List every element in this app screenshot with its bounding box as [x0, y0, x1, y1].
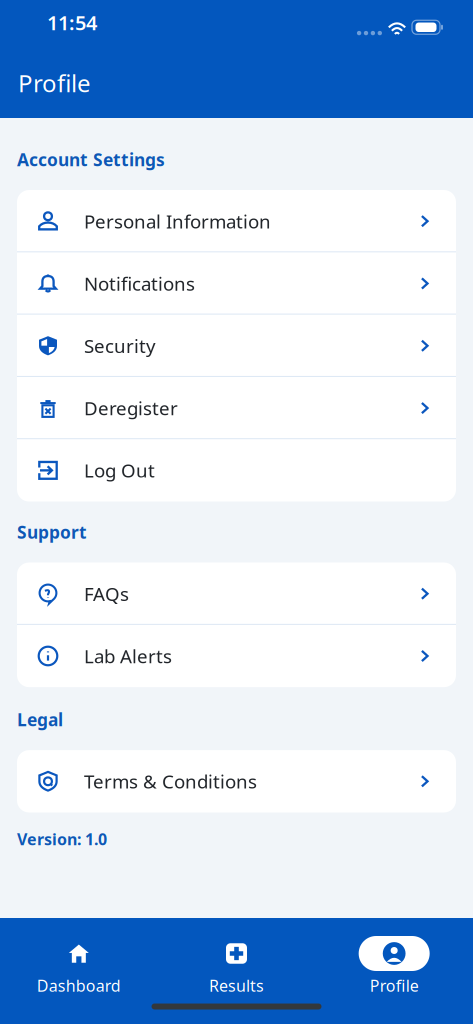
staticText: Personal Information — [84, 209, 271, 234]
staticText: Version: 1.0 — [17, 828, 107, 850]
button[interactable]: Notifications — [17, 252, 456, 315]
staticText: Lab Alerts — [84, 644, 172, 668]
button[interactable]: Personal Information — [17, 190, 456, 252]
staticText: Deregister — [84, 396, 178, 420]
button[interactable]: Security — [17, 315, 456, 377]
staticText: Log Out — [84, 458, 155, 483]
staticText: Dashboard — [37, 975, 121, 996]
button[interactable]: Dashboard — [0, 918, 158, 1000]
button[interactable]: Profile — [315, 918, 473, 1000]
staticText: Profile — [370, 975, 419, 996]
button[interactable]: Log Out — [17, 439, 456, 501]
staticText: Account Settings — [17, 148, 165, 171]
staticText: Results — [209, 975, 264, 996]
staticText: 11:54 — [47, 9, 97, 36]
button[interactable]: Results — [158, 918, 315, 1000]
staticText: Legal — [17, 708, 63, 731]
staticText: Profile — [18, 67, 91, 99]
staticText: Notifications — [84, 271, 195, 296]
staticText: Security — [84, 333, 156, 358]
button[interactable]: Terms & Conditions — [17, 750, 456, 812]
button[interactable]: Lab Alerts — [17, 625, 456, 687]
button[interactable]: Deregister — [17, 377, 456, 439]
staticText: Terms & Conditions — [84, 769, 257, 794]
button[interactable]: FAQs — [17, 562, 456, 625]
staticText: FAQs — [84, 581, 129, 606]
staticText: Support — [17, 520, 87, 543]
